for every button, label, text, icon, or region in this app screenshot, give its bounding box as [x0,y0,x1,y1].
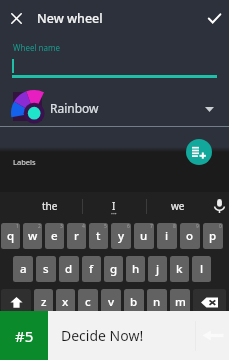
staticText: Decide Now! [61,326,144,345]
staticText: 8 [173,223,176,230]
button[interactable]: s [36,256,56,282]
staticText: d [65,261,73,277]
staticText: r [74,228,79,244]
button[interactable]: #5 [0,311,229,360]
button[interactable]: k [170,256,189,282]
staticText: I [112,199,116,213]
staticText: z [41,294,47,310]
staticText: p [209,228,217,244]
staticText: e [51,228,58,244]
staticText: c [85,294,91,310]
button[interactable]: i [157,223,177,249]
staticText: 3 [60,223,63,230]
staticText: the [42,199,58,213]
staticText: l [200,261,204,277]
button[interactable]: g [104,256,123,282]
button[interactable]: f [82,256,101,282]
staticText: t [96,228,101,244]
button[interactable]: a [13,256,33,282]
button[interactable]: o [180,223,200,249]
staticText: y [118,228,125,244]
staticText: 0 [219,223,222,230]
staticText: i [165,228,169,244]
staticText: Rainbow [50,100,99,116]
button[interactable]: Add label [186,139,212,165]
staticText: h [132,261,140,277]
staticText: 5 [104,223,107,230]
button[interactable]: y [111,223,131,249]
button[interactable]: z [34,289,53,315]
button[interactable]: w [23,223,42,249]
button[interactable]: m [170,289,190,315]
button[interactable]: I [82,193,146,219]
staticText: n [153,294,161,310]
staticText: b [130,294,138,310]
button[interactable]: e [45,223,64,249]
staticText: s [43,261,49,277]
button[interactable]: j [148,256,167,282]
staticText: k [176,261,183,277]
button[interactable]: Shift [1,289,31,315]
staticText: f [89,261,94,277]
button[interactable]: v [101,289,121,315]
button[interactable]: Close [6,8,26,28]
staticText: 1 [16,223,19,230]
staticText: we [171,199,185,213]
staticText: a [20,261,27,277]
button[interactable]: q [1,223,20,249]
button[interactable]: x [56,289,75,315]
staticText: 9 [196,223,199,230]
staticText: 2 [38,223,41,230]
button[interactable]: d [59,256,79,282]
button[interactable]: Voice input [210,193,229,219]
button[interactable]: b [124,289,144,315]
button[interactable]: Save [204,8,224,28]
staticText: New wheel [37,10,103,27]
staticText: u [140,228,148,244]
staticText: Wheel name [13,42,60,53]
button[interactable]: l [192,256,211,282]
button[interactable]: t [89,223,108,249]
button[interactable]: the [18,193,82,219]
button[interactable]: h [126,256,145,282]
button[interactable]: c [78,289,98,315]
button[interactable]: u [134,223,154,249]
staticText: q [7,228,15,244]
staticText: 7 [150,223,153,230]
staticText: j [156,261,160,277]
staticText: v [108,294,115,310]
staticText: ••• [111,211,117,218]
staticText: o [186,228,194,244]
button[interactable]: Rainbow [0,86,229,127]
staticText: w [28,228,38,244]
button[interactable]: Backspace [193,289,226,315]
button[interactable]: n [147,289,167,315]
button[interactable]: r [67,223,86,249]
staticText: m [175,294,186,310]
staticText: Labels [13,157,36,167]
staticText: 6 [127,223,130,230]
staticText: 4 [82,223,85,230]
staticText: #5 [15,326,34,346]
button[interactable]: p [203,223,223,249]
button[interactable]: we [146,193,210,219]
staticText: x [62,294,69,310]
staticText: g [110,261,118,277]
